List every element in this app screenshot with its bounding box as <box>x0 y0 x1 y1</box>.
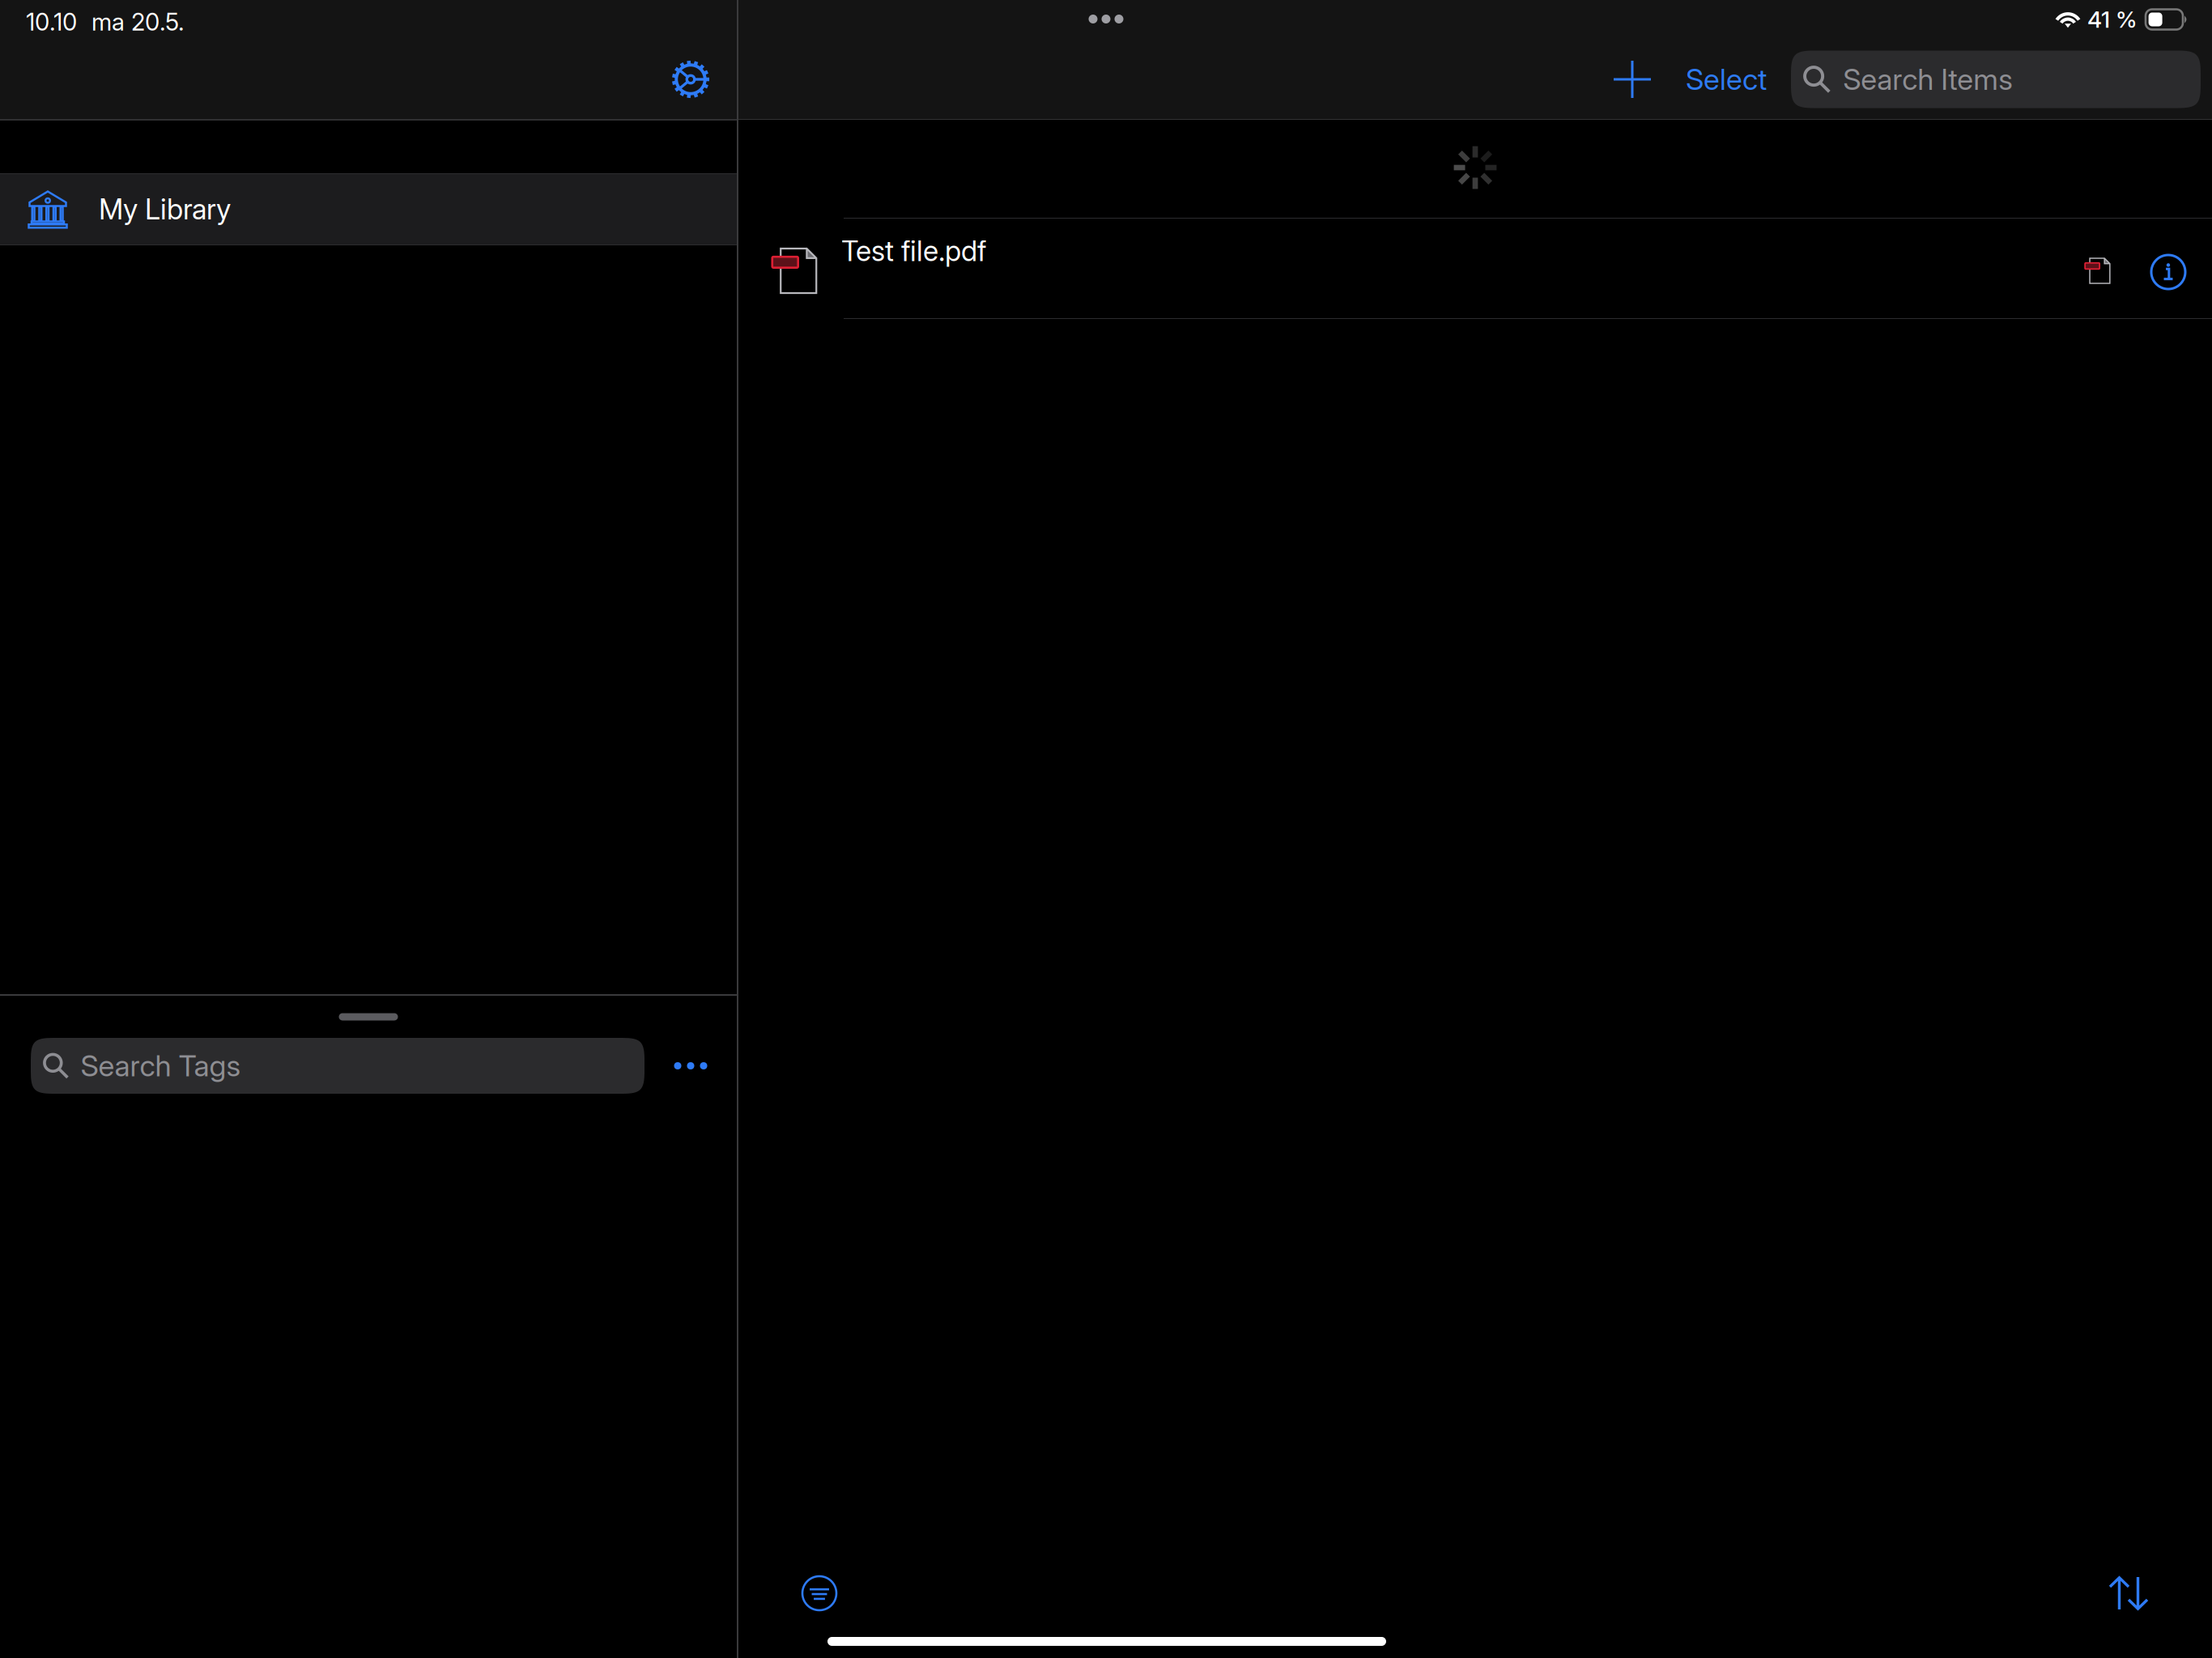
button[interactable]: My Library <box>0 174 737 244</box>
staticText: Search Items <box>1843 62 2013 97</box>
staticText: 10.10 <box>26 8 77 36</box>
button[interactable]: Select <box>1678 47 1775 112</box>
staticText: Test file.pdf <box>841 234 986 268</box>
button[interactable]: Settings <box>655 44 726 115</box>
staticText: Select <box>1686 62 1767 97</box>
staticText: Search Tags <box>80 1048 241 1083</box>
button[interactable]: Filter <box>786 1560 853 1626</box>
button[interactable]: Sort <box>2095 1560 2162 1626</box>
button[interactable]: Test file.pdf <box>738 219 2212 318</box>
staticText: My Library <box>99 192 231 226</box>
button[interactable]: Tag options <box>661 1039 721 1093</box>
staticText: 41 % <box>2087 6 2138 33</box>
button[interactable]: Add Item <box>1600 47 1665 112</box>
staticText: ma 20.5. <box>91 8 185 36</box>
